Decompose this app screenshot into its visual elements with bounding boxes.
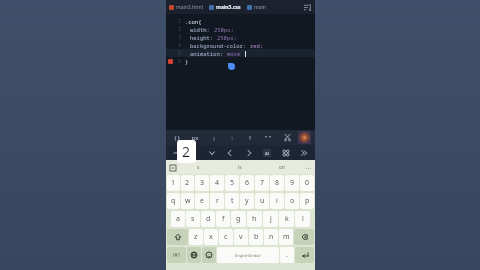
staticText: is: [238, 164, 242, 171]
button[interactable]: w: [181, 193, 194, 209]
button[interactable]: e: [195, 193, 209, 209]
button[interactable]: Next: [242, 145, 255, 160]
staticText: o: [290, 196, 295, 206]
button[interactable]: b: [249, 229, 263, 245]
staticText: }: [185, 58, 189, 65]
button[interactable]: px: [188, 130, 202, 145]
button[interactable]: Cut: [280, 130, 294, 145]
button[interactable]: Emoji: [202, 247, 216, 263]
button[interactable]: d: [201, 211, 215, 227]
staticText: g: [236, 214, 241, 224]
button[interactable]: !: [243, 130, 257, 145]
button[interactable]: z: [189, 229, 203, 245]
button[interactable]: u: [255, 193, 269, 209]
button[interactable]: s: [177, 160, 219, 174]
button[interactable]: s: [186, 211, 200, 227]
button[interactable]: Previous: [223, 145, 236, 160]
staticText: 2: [185, 178, 190, 188]
button[interactable]: Backspace: [294, 229, 314, 245]
button[interactable]: 6: [240, 175, 254, 191]
button[interactable]: Command: [279, 145, 292, 160]
staticText: .con{: [185, 18, 202, 25]
button[interactable]: o: [285, 193, 299, 209]
button[interactable]: Sort tabs: [301, 1, 313, 13]
staticText: 7: [260, 178, 265, 188]
button[interactable]: l: [295, 211, 310, 227]
button[interactable]: g: [231, 211, 246, 227]
button[interactable]: main3.css: [208, 0, 242, 14]
staticText: ;: [212, 134, 216, 142]
button[interactable]: q: [167, 193, 180, 209]
button[interactable]: n: [264, 229, 278, 245]
staticText: x: [209, 232, 213, 242]
button[interactable]: on: [261, 160, 303, 174]
button[interactable]: 7: [255, 175, 269, 191]
button[interactable]: j: [263, 211, 278, 227]
button[interactable]: English(India): [217, 247, 279, 263]
button[interactable]: t: [225, 193, 239, 209]
staticText: 5: [230, 178, 235, 188]
button[interactable]: More options: [303, 162, 313, 172]
staticText: 1: [178, 18, 182, 25]
staticText: b: [254, 232, 259, 242]
staticText: English(India): [235, 253, 261, 258]
button[interactable]: f: [216, 211, 230, 227]
button[interactable]: 3: [195, 175, 209, 191]
staticText: main: [254, 4, 266, 11]
staticText: on: [279, 164, 286, 171]
staticText: 6: [245, 178, 250, 188]
staticText: m: [283, 232, 290, 242]
button[interactable]: m: [279, 229, 293, 245]
staticText: width:: [190, 26, 214, 33]
staticText: 250px;: [217, 34, 237, 41]
staticText: f: [222, 214, 225, 224]
button[interactable]: More: [297, 145, 310, 160]
staticText: i: [276, 196, 278, 206]
button[interactable]: 9: [285, 175, 299, 191]
staticText: y: [245, 196, 249, 206]
button[interactable]: .: [280, 247, 294, 263]
button[interactable]: c: [219, 229, 233, 245]
button[interactable]: a: [171, 211, 185, 227]
button[interactable]: r: [210, 193, 224, 209]
staticText: n: [269, 232, 274, 242]
button[interactable]: h: [247, 211, 262, 227]
button[interactable]: main3.html: [168, 0, 204, 14]
staticText: main3.html: [176, 4, 203, 11]
staticText: move: [227, 50, 244, 57]
button[interactable]: ;: [207, 130, 221, 145]
button[interactable]: Change language: [187, 247, 201, 263]
button[interactable]: main: [246, 0, 267, 14]
button[interactable]: 2: [181, 175, 194, 191]
button[interactable]: p: [300, 193, 314, 209]
staticText: ⋯: [305, 164, 311, 171]
button[interactable]: v: [234, 229, 248, 245]
button[interactable]: :: [225, 130, 239, 145]
button[interactable]: Enter: [295, 247, 314, 263]
button[interactable]: !#1: [167, 247, 186, 263]
button[interactable]: "": [261, 130, 275, 145]
button[interactable]: Expand: [205, 145, 218, 160]
button[interactable]: 1: [167, 175, 180, 191]
staticText: q: [171, 196, 176, 206]
staticText: j: [270, 214, 272, 224]
button[interactable]: {}: [170, 130, 184, 145]
button[interactable]: y: [240, 193, 254, 209]
button[interactable]: Shift: [167, 229, 188, 245]
button[interactable]: Clipboard: [168, 163, 177, 172]
button[interactable]: x: [204, 229, 218, 245]
button[interactable]: 4: [210, 175, 224, 191]
button[interactable]: AI assistant: [260, 145, 274, 160]
staticText: 8: [275, 178, 280, 188]
staticText: d: [206, 214, 211, 224]
button[interactable]: 8: [270, 175, 284, 191]
staticText: u: [260, 196, 265, 206]
button[interactable]: 0: [300, 175, 314, 191]
button[interactable]: Tab: [171, 145, 184, 160]
button[interactable]: is: [219, 160, 261, 174]
button[interactable]: 5: [225, 175, 239, 191]
button[interactable]: i: [270, 193, 284, 209]
staticText: 2: [178, 26, 182, 33]
button[interactable]: Preview: [298, 131, 311, 144]
button[interactable]: k: [279, 211, 294, 227]
